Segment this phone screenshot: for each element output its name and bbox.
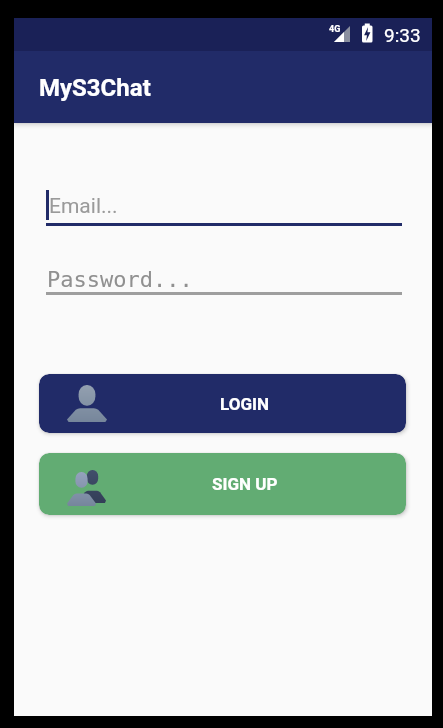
button[interactable]: LOGIN	[39, 374, 406, 433]
staticText: 4G	[329, 24, 341, 35]
staticText: LOGIN	[220, 394, 269, 414]
staticText: SIGN UP	[212, 474, 278, 494]
button[interactable]: Email...	[46, 183, 402, 228]
staticText: 9:33	[384, 24, 421, 46]
staticText: Email...	[49, 194, 118, 219]
button[interactable]: Password...	[46, 258, 402, 298]
staticText: Password...	[47, 267, 193, 293]
button[interactable]: SIGN UP	[39, 453, 406, 515]
staticText: MyS3Chat	[39, 74, 151, 102]
